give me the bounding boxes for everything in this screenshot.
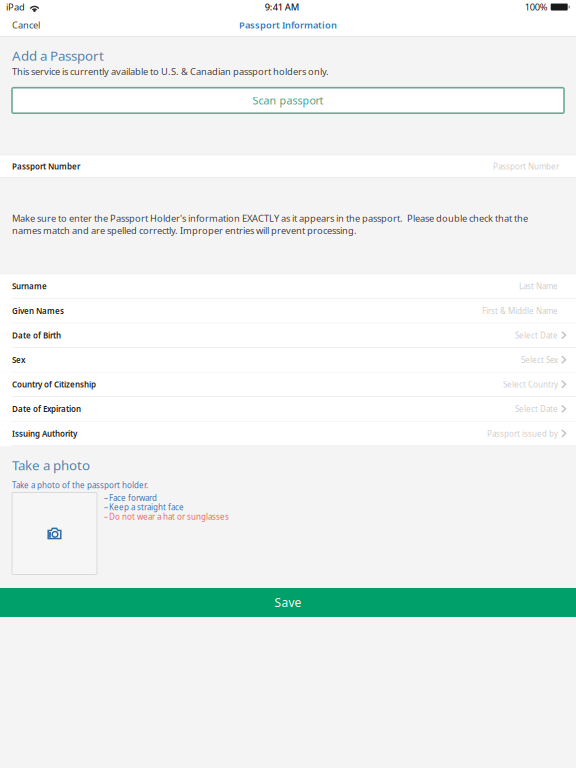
button[interactable]: Date of Expiration	[0, 397, 576, 422]
staticText: 9:41 AM	[265, 1, 300, 13]
button[interactable]: Scan passport	[12, 88, 564, 113]
staticText: Cancel	[12, 19, 40, 31]
button[interactable]: Country of Citizenship	[0, 372, 576, 397]
staticText: Date of Birth	[12, 330, 61, 341]
staticText: Passport issued by	[487, 428, 558, 439]
button[interactable]: Sex	[0, 348, 576, 372]
button[interactable]: Surname	[0, 274, 576, 299]
staticText: Last Name	[519, 281, 558, 291]
staticText: – Face forward	[104, 492, 157, 503]
staticText: – Keep a straight face	[104, 502, 184, 512]
staticText: Add a Passport	[12, 47, 104, 64]
staticText: Passport Number	[12, 161, 80, 172]
staticText: – Do not wear a hat or sunglasses	[104, 511, 229, 522]
staticText: Surname	[12, 281, 47, 291]
staticText: Select Sex	[521, 355, 558, 365]
staticText: This service is currently available to U…	[12, 65, 329, 78]
button[interactable]: Cancel	[0, 14, 52, 36]
staticText: Make sure to enter the Passport Holder's…	[12, 212, 528, 237]
staticText: Issuing Authority	[12, 428, 77, 439]
button[interactable]: Take a photo	[12, 492, 97, 574]
staticText: Country of Citizenship	[12, 379, 96, 390]
staticText: Scan passport	[252, 93, 323, 108]
button[interactable]: Save	[0, 588, 576, 617]
button[interactable]: Issuing Authority	[0, 422, 576, 446]
staticText: Select Country	[503, 379, 558, 390]
staticText: First & Middle Name	[482, 305, 558, 316]
staticText: Passport Number	[493, 161, 559, 172]
staticText: Select Date	[515, 404, 558, 414]
button[interactable]: Date of Birth	[0, 323, 576, 348]
staticText: Date of Expiration	[12, 404, 81, 414]
staticText: Given Names	[12, 305, 64, 316]
staticText: 100%	[525, 1, 548, 13]
staticText: Passport Information	[239, 19, 337, 31]
staticText: Take a photo	[12, 456, 90, 474]
staticText: Save	[274, 594, 301, 610]
button[interactable]: Given Names	[0, 299, 576, 323]
staticText: Sex	[12, 355, 25, 365]
staticText: iPad	[6, 1, 25, 13]
staticText: Select Date	[515, 330, 558, 341]
staticText: Take a photo of the passport holder.	[12, 480, 148, 490]
